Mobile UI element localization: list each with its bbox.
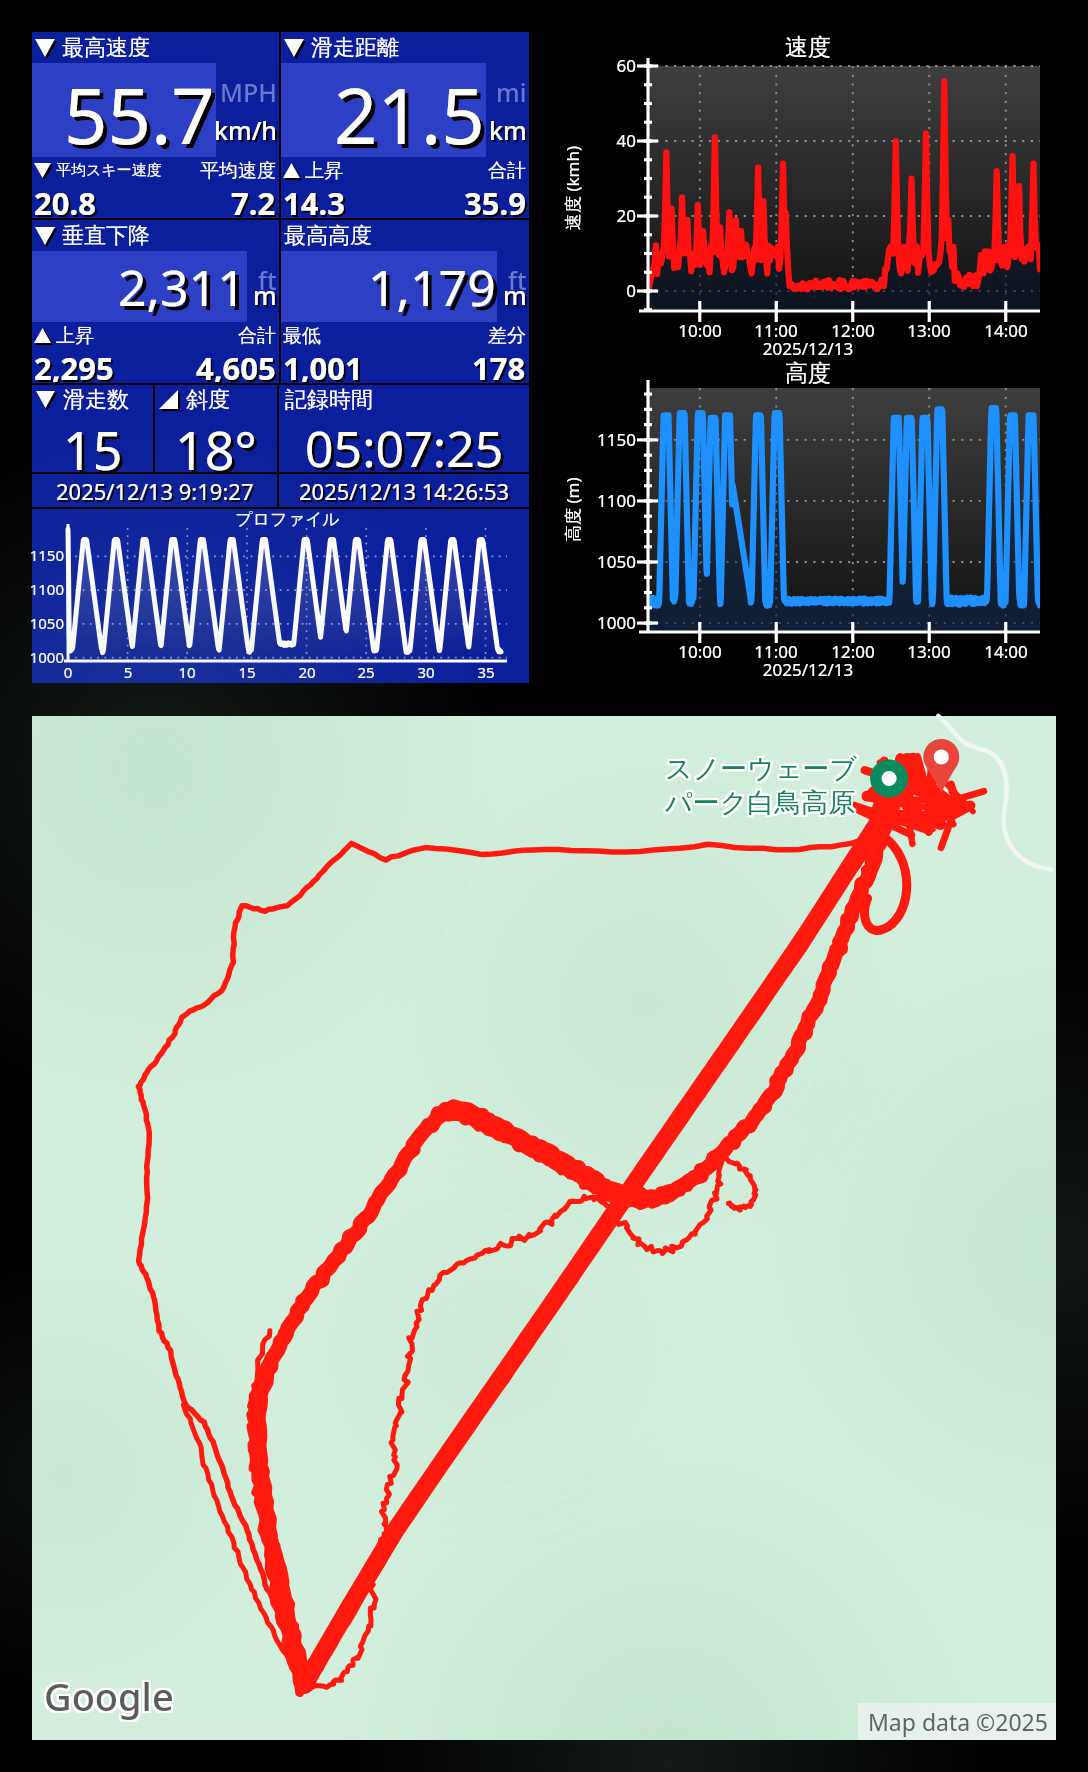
staticText: Map data ©2025: [868, 1706, 1048, 1737]
staticText: パーク白鳥高原: [667, 784, 858, 818]
staticText: 高度: [658, 359, 958, 388]
button[interactable]: 2025/12/13 14:26:53: [279, 474, 529, 507]
staticText: スノーウェーブ: [667, 752, 860, 786]
staticText: 20: [536, 204, 636, 227]
staticText: 滑走距離: [311, 34, 399, 62]
staticText: 上昇: [305, 159, 343, 183]
staticText: 0: [48, 662, 88, 682]
staticText: 15: [63, 414, 123, 472]
staticText: 14.3: [283, 182, 345, 217]
staticText: m: [253, 278, 277, 312]
staticText: パーク白鳥高原: [665, 784, 856, 818]
button[interactable]: 記録時間: [279, 385, 529, 472]
staticText: mi: [496, 75, 527, 109]
staticText: 13:00: [874, 640, 984, 663]
button[interactable]: 滑走距離: [281, 32, 529, 218]
staticText: 35.9: [464, 182, 526, 217]
staticText: パーク白鳥高原: [667, 786, 858, 820]
staticText: 平均速度: [200, 159, 276, 183]
staticText: 2,295: [34, 347, 114, 382]
staticText: パーク白鳥高原: [667, 788, 858, 822]
staticText: Google: [44, 1670, 174, 1722]
staticText: 21.5: [334, 63, 485, 157]
staticText: m: [255, 280, 279, 314]
staticText: 60: [536, 54, 636, 77]
button[interactable]: 最高高度: [281, 220, 529, 383]
staticText: 2025/12/13 9:19:27: [58, 478, 256, 508]
staticText: 10:00: [645, 319, 755, 342]
staticText: 上昇: [56, 324, 94, 348]
staticText: 7.2: [231, 182, 276, 217]
staticText: Google: [46, 1672, 176, 1724]
staticText: 垂直下降: [62, 222, 150, 250]
staticText: km/h: [214, 113, 277, 147]
staticText: 1,179: [368, 253, 496, 321]
staticText: パーク白鳥高原: [663, 788, 854, 822]
staticText: 7.2: [233, 184, 278, 219]
button[interactable]: 斜度: [155, 385, 277, 472]
button[interactable]: スノーウェーブパーク白鳥高原: [870, 759, 912, 801]
staticText: 2025/12/13: [658, 337, 958, 360]
staticText: 1000: [28, 647, 64, 667]
staticText: 4,605: [196, 347, 276, 382]
staticText: 178: [474, 349, 528, 384]
staticText: km/h: [216, 115, 279, 149]
staticText: m: [505, 280, 529, 314]
staticText: 滑走数: [63, 386, 129, 414]
button[interactable]: 最高速度: [32, 32, 279, 218]
staticText: 05:07:25: [305, 414, 504, 472]
staticText: Google: [46, 1670, 176, 1722]
staticText: 0: [536, 279, 636, 302]
staticText: 速度: [658, 33, 958, 62]
staticText: 13:00: [874, 319, 984, 342]
staticText: Google: [44, 1668, 174, 1720]
staticText: 55.7: [64, 63, 215, 157]
staticText: 21.5: [338, 67, 489, 161]
staticText: 記録時間: [285, 386, 373, 414]
button[interactable]: 高度グラフ: [545, 348, 1055, 678]
staticText: 10:00: [645, 640, 755, 663]
staticText: 1100: [28, 579, 64, 599]
button[interactable]: 最高速度: [32, 32, 529, 683]
staticText: Google: [42, 1672, 172, 1724]
staticText: 178: [472, 347, 526, 382]
staticText: Google: [42, 1668, 172, 1720]
staticText: スノーウェーブ: [665, 752, 858, 786]
button[interactable]: 滑走ルートの地図: [32, 716, 1056, 1740]
button[interactable]: 滑走数: [32, 385, 153, 472]
staticText: 2,295: [36, 349, 116, 384]
staticText: 05:07:25: [308, 417, 507, 475]
staticText: スノーウェーブ: [663, 752, 856, 786]
staticText: パーク白鳥高原: [665, 786, 856, 820]
staticText: 12:00: [798, 640, 908, 663]
staticText: 2025/12/13 14:26:53: [301, 478, 512, 508]
staticText: スノーウェーブ: [665, 750, 858, 784]
staticText: 最低: [283, 324, 321, 348]
staticText: MPH: [220, 75, 277, 109]
button[interactable]: 速度グラフ: [545, 14, 1055, 344]
button[interactable]: Google: [44, 1670, 174, 1722]
staticText: 斜度: [186, 386, 230, 414]
staticText: 4,605: [198, 349, 278, 384]
button[interactable]: 2025/12/13 9:19:27: [32, 474, 277, 507]
staticText: 10: [167, 662, 207, 682]
staticText: 1150: [536, 428, 636, 451]
staticText: 2025/12/13 9:19:27: [56, 476, 254, 506]
staticText: 18°: [178, 417, 260, 475]
button[interactable]: スキー場マーカー: [922, 736, 964, 778]
staticText: 1,001: [283, 347, 363, 382]
staticText: スノーウェーブ: [663, 754, 856, 788]
staticText: スノーウェーブ: [665, 754, 858, 788]
staticText: 11:00: [721, 640, 831, 663]
staticText: 14.3: [285, 184, 347, 219]
button[interactable]: 垂直下降: [32, 220, 279, 383]
button[interactable]: Map data ©2025: [858, 1703, 1056, 1740]
staticText: プロファイル: [68, 509, 507, 530]
staticText: 高度 (m): [561, 477, 584, 542]
staticText: 18°: [175, 414, 257, 472]
staticText: Google: [42, 1670, 172, 1722]
staticText: パーク白鳥高原: [663, 784, 854, 818]
staticText: パーク白鳥高原: [663, 786, 854, 820]
staticText: 40: [536, 129, 636, 152]
staticText: 11:00: [721, 319, 831, 342]
